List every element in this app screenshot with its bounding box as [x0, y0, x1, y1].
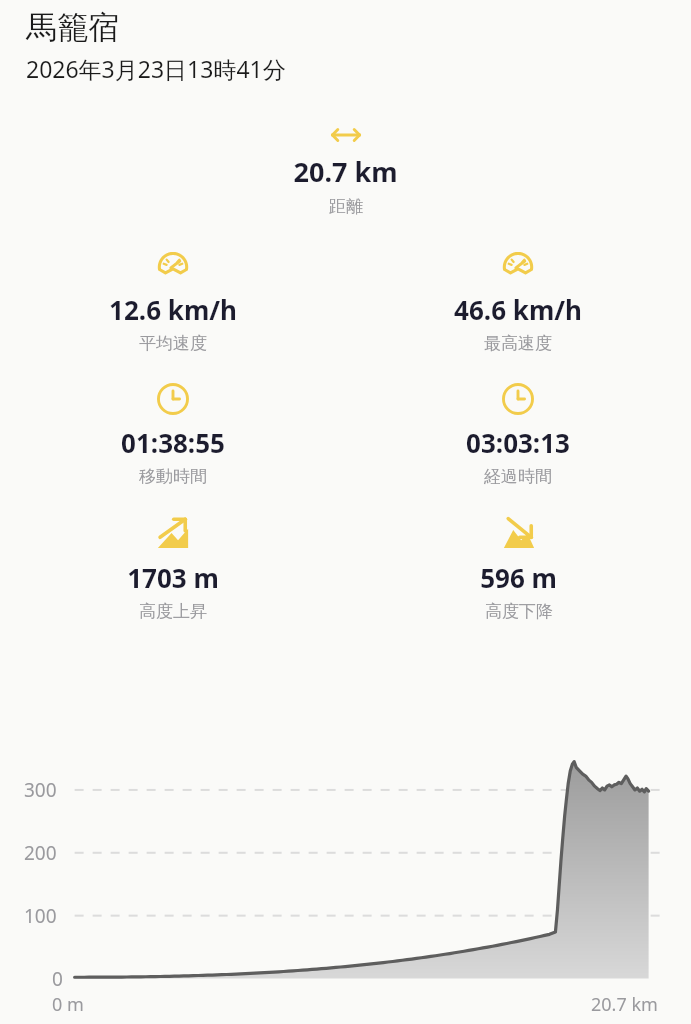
staticText: 距離: [329, 196, 363, 217]
button[interactable]: Time: [121, 382, 225, 487]
staticText: 馬籠宿: [26, 8, 119, 47]
staticText: 平均速度: [139, 333, 207, 354]
staticText: 100: [24, 903, 57, 929]
staticText: 46.6 km/h: [454, 292, 582, 327]
staticText: 596 m: [480, 560, 557, 595]
other: Time: [501, 382, 535, 416]
other: Elevation gain: [155, 515, 191, 551]
other: Speed: [500, 247, 536, 283]
staticText: 2026年3月23日13時41分: [26, 53, 286, 84]
staticText: 200: [24, 840, 57, 866]
other: Distance: [329, 126, 363, 144]
staticText: 1703 m: [127, 560, 219, 595]
staticText: 経過時間: [484, 466, 552, 487]
staticText: 300: [24, 777, 57, 803]
staticText: 移動時間: [139, 466, 207, 487]
other: Time: [156, 382, 190, 416]
other: Speed: [155, 247, 191, 283]
button[interactable]: Elevation loss: [480, 515, 557, 622]
button[interactable]: Speed: [109, 247, 237, 354]
button[interactable]: Elevation gain: [127, 515, 219, 622]
staticText: 高度下降: [485, 601, 553, 622]
staticText: 0 m: [52, 992, 84, 1017]
staticText: 03:03:13: [466, 425, 570, 460]
button[interactable]: Speed: [454, 247, 582, 354]
staticText: 20.7 km: [591, 992, 658, 1017]
staticText: 高度上昇: [139, 601, 207, 622]
staticText: 0: [52, 966, 63, 992]
other: Elevation loss: [501, 515, 537, 551]
staticText: 12.6 km/h: [109, 292, 237, 327]
staticText: 01:38:55: [121, 425, 225, 460]
button[interactable]: Time: [466, 382, 570, 487]
staticText: 20.7 km: [293, 153, 398, 190]
button[interactable]: Distance: [0, 126, 691, 217]
staticText: 最高速度: [484, 333, 552, 354]
